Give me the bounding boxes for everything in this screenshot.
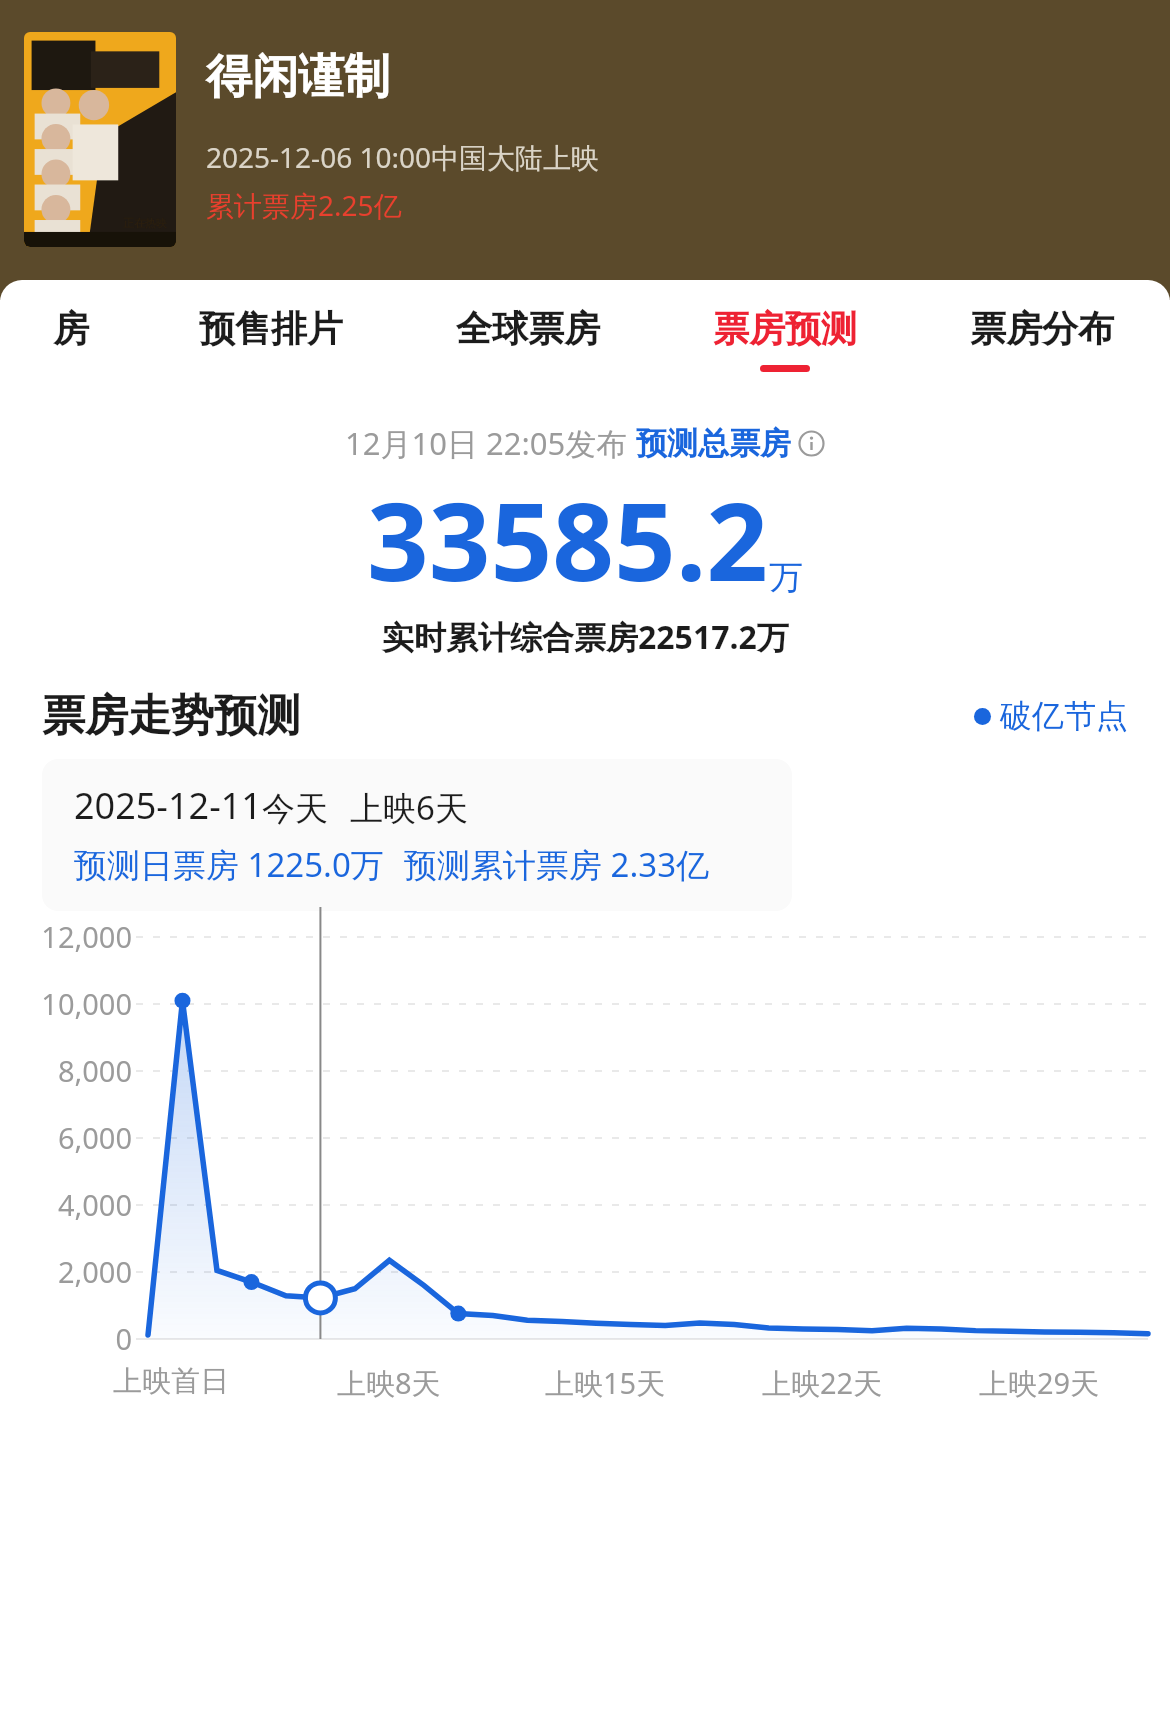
staticText: 6,000 bbox=[0, 1118, 132, 1157]
staticText: 预测日票房 1225.0万 bbox=[74, 842, 384, 887]
staticText: 0 bbox=[0, 1319, 132, 1358]
button[interactable]: 全球票房 bbox=[399, 280, 656, 398]
staticText: 2,000 bbox=[0, 1252, 132, 1291]
staticText: 上映8天 bbox=[337, 1363, 441, 1403]
button[interactable]: 破亿节点 bbox=[974, 696, 1128, 736]
staticText: 12月10日 22:05发布 bbox=[345, 422, 636, 464]
staticText: 2025-12-06 10:00中国大陆上映 bbox=[206, 138, 600, 176]
staticText: 预售排片 bbox=[199, 306, 343, 351]
other: Info about prediction bbox=[798, 430, 825, 457]
staticText: 上映29天 bbox=[979, 1363, 1100, 1403]
staticText: 破亿节点 bbox=[1000, 696, 1128, 736]
button[interactable]: Movie poster 得闲谨制 bbox=[24, 32, 176, 247]
staticText: 今天 bbox=[262, 788, 328, 830]
button[interactable]: 票房预测 bbox=[656, 280, 913, 398]
staticText: 实时累计综合票房22517.2万 bbox=[382, 615, 789, 659]
staticText: 上映22天 bbox=[762, 1363, 883, 1403]
staticText: 预测累计票房 2.33亿 bbox=[404, 842, 710, 887]
staticText: 票房预测 bbox=[713, 306, 857, 351]
staticText: 房 bbox=[53, 306, 89, 351]
button[interactable]: 票房分布 bbox=[913, 280, 1170, 398]
staticText: 33585.2 bbox=[367, 466, 769, 613]
staticText: 2025-12-11 bbox=[74, 781, 262, 830]
staticText: 票房分布 bbox=[970, 306, 1114, 351]
staticText: 12,000 bbox=[0, 917, 132, 956]
button[interactable]: 房 bbox=[0, 280, 142, 398]
staticText: 全球票房 bbox=[456, 306, 600, 351]
staticText: 上映首日 bbox=[113, 1363, 229, 1400]
staticText: 8,000 bbox=[0, 1051, 132, 1090]
staticText: 10,000 bbox=[0, 984, 132, 1023]
button[interactable]: 预测总票房 bbox=[636, 424, 825, 463]
staticText: 上映15天 bbox=[545, 1363, 666, 1403]
staticText: 上映6天 bbox=[350, 785, 468, 830]
staticText: 得闲谨制 bbox=[206, 48, 390, 106]
staticText: 4,000 bbox=[0, 1185, 132, 1224]
staticText: 累计票房2.25亿 bbox=[206, 186, 402, 224]
staticText: 票房走势预测 bbox=[42, 689, 300, 743]
staticText: 预测总票房 bbox=[636, 424, 791, 463]
button[interactable]: 2025-12-11 bbox=[42, 759, 792, 911]
staticText: 万 bbox=[769, 556, 803, 599]
button[interactable]: 预售排片 bbox=[142, 280, 399, 398]
